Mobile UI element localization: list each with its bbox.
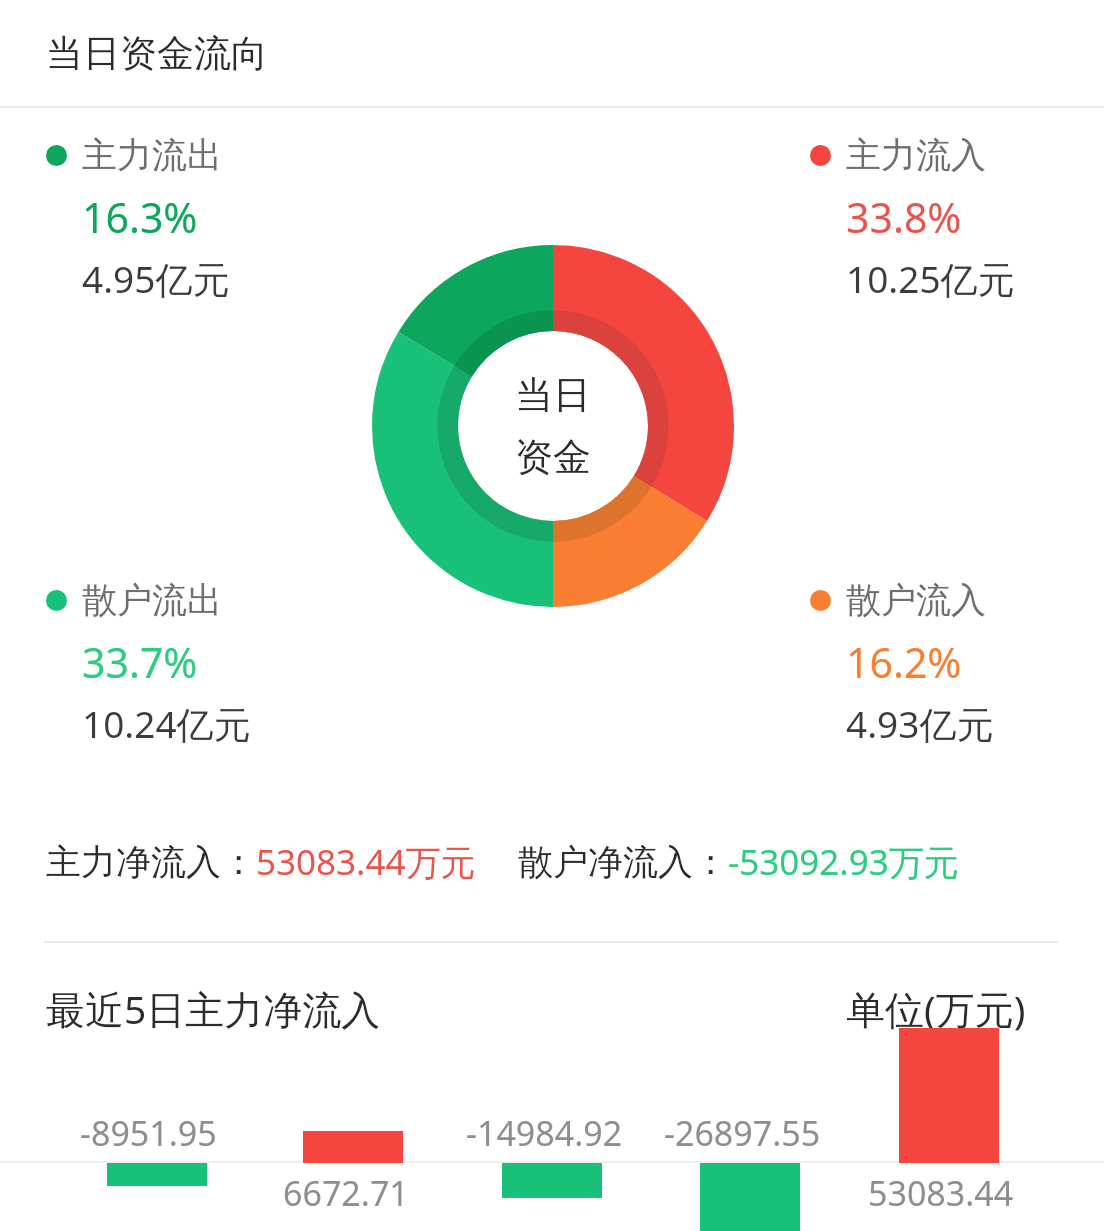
button[interactable]: 散户流入 <box>810 578 994 749</box>
staticText: 4.95亿元 <box>82 253 230 304</box>
staticText: 散户净流入： <box>518 840 728 884</box>
staticText: 最近5日主力净流入 <box>46 982 381 1035</box>
staticText: 当日资金流向 <box>46 30 268 77</box>
staticText: 散户流出 <box>82 578 222 622</box>
staticText: 33.8% <box>846 189 962 245</box>
button[interactable]: 当日资金流向 <box>0 0 1104 107</box>
staticText: 主力流出 <box>82 133 222 177</box>
staticText: 6672.71 <box>283 1170 409 1216</box>
staticText: 10.25亿元 <box>846 253 1015 304</box>
staticText: 当日 <box>515 371 591 419</box>
staticText: 53083.44 <box>868 1170 1014 1216</box>
staticText: 散户流入 <box>846 578 986 622</box>
staticText: 10.24亿元 <box>82 698 251 749</box>
staticText: 16.3% <box>82 189 198 245</box>
staticText: 主力净流入： <box>46 840 256 884</box>
button[interactable]: 散户流出 <box>46 578 251 749</box>
staticText: 4.93亿元 <box>846 698 994 749</box>
button[interactable]: 主力流出 <box>46 133 230 304</box>
staticText: 16.2% <box>846 634 962 690</box>
staticText: 单位(万元) <box>846 982 1026 1035</box>
staticText: 主力流入 <box>846 133 986 177</box>
staticText: 53083.44万元 <box>256 838 476 886</box>
button[interactable]: 当日资金流向环形图 <box>372 245 734 607</box>
staticText: -8951.95 <box>80 1110 217 1156</box>
staticText: 33.7% <box>82 634 198 690</box>
staticText: -14984.92 <box>466 1110 623 1156</box>
staticText: 资金 <box>515 433 591 481</box>
staticText: -53092.93万元 <box>728 838 959 886</box>
staticText: -26897.55 <box>664 1110 821 1156</box>
button[interactable]: 主力流入 <box>810 133 1015 304</box>
